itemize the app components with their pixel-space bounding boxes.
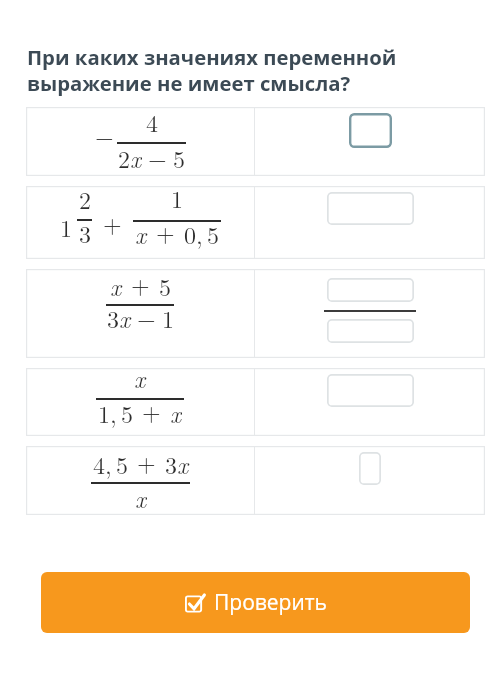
staticText: + xyxy=(103,206,122,240)
staticText: 1 xyxy=(171,181,183,215)
staticText: 5 xyxy=(159,269,171,303)
button[interactable]: Answer input xyxy=(359,452,381,485)
button[interactable]: − xyxy=(26,107,485,176)
button[interactable]: x xyxy=(26,368,485,436)
button[interactable]: 1 xyxy=(26,186,485,259)
button[interactable]: x xyxy=(26,269,485,358)
staticText: − xyxy=(148,141,167,174)
staticText: 5 xyxy=(121,396,133,428)
staticText: x xyxy=(134,361,146,395)
staticText: 1, xyxy=(98,396,117,428)
button[interactable]: Answer input xyxy=(327,319,414,343)
staticText: x xyxy=(170,396,182,428)
staticText: + xyxy=(137,445,156,479)
staticText: 2 xyxy=(79,182,91,216)
staticText: 2 xyxy=(118,141,130,174)
staticText: 5 xyxy=(116,447,128,481)
staticText: + xyxy=(142,394,161,426)
staticText: 3 xyxy=(107,301,119,335)
button[interactable]: Answer input xyxy=(327,374,414,407)
staticText: 5 xyxy=(173,141,185,174)
staticText: x xyxy=(110,269,122,303)
staticText: x xyxy=(177,447,189,481)
button[interactable]: 4, xyxy=(26,446,485,515)
staticText: При каких значениях переменной выражение… xyxy=(27,43,397,97)
staticText: 1 xyxy=(162,301,174,335)
button[interactable]: Answer input xyxy=(327,192,414,225)
staticText: 0, xyxy=(184,217,203,251)
staticText: + xyxy=(131,267,150,301)
staticText: 1 xyxy=(60,210,72,244)
button[interactable]: Answer input xyxy=(349,113,392,148)
staticText: x xyxy=(135,217,147,251)
button[interactable]: Проверить xyxy=(41,572,470,633)
staticText: x xyxy=(135,481,147,514)
staticText: 3 xyxy=(79,216,91,250)
staticText: x xyxy=(130,141,142,174)
staticText: − xyxy=(137,301,156,335)
staticText: + xyxy=(156,215,175,249)
staticText: 4 xyxy=(146,105,158,139)
staticText: Проверить xyxy=(214,588,327,617)
staticText: x xyxy=(119,301,131,335)
staticText: 4, xyxy=(93,447,112,481)
staticText: − xyxy=(95,119,114,153)
staticText: 3 xyxy=(165,447,177,481)
button[interactable]: Answer input xyxy=(327,278,414,302)
staticText: 5 xyxy=(207,217,219,251)
